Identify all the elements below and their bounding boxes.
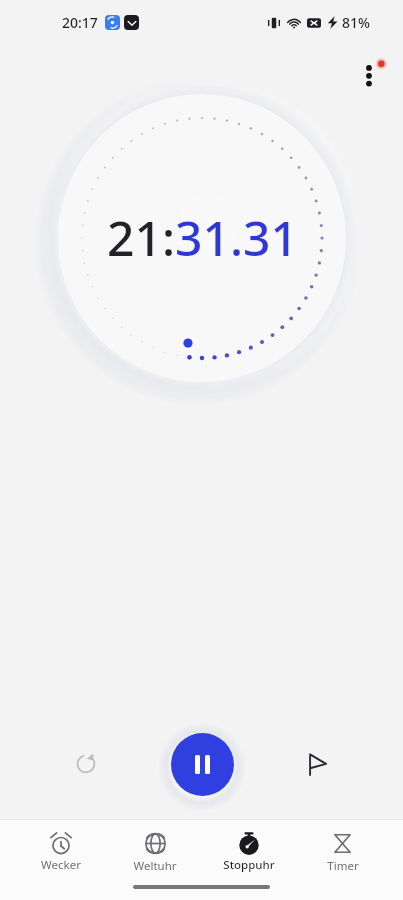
staticText: 31.31: [175, 205, 298, 270]
staticText: Weltuhr: [133, 858, 177, 874]
button[interactable]: Lap: [294, 740, 342, 788]
button[interactable]: Stoppuhr: [202, 819, 296, 877]
button[interactable]: Weltuhr: [108, 819, 202, 877]
button[interactable]: Timer: [296, 819, 389, 877]
button[interactable]: Wecker: [14, 819, 108, 877]
staticText: Wecker: [41, 857, 81, 873]
staticText: Timer: [327, 858, 359, 874]
staticText: 81%: [342, 13, 370, 32]
button[interactable]: Pause: [171, 733, 234, 796]
staticText: 20:17: [62, 13, 98, 32]
staticText: Stoppuhr: [223, 857, 275, 873]
staticText: 21:: [107, 205, 175, 270]
button[interactable]: Reset: [62, 740, 110, 788]
button[interactable]: More options: [347, 46, 391, 90]
